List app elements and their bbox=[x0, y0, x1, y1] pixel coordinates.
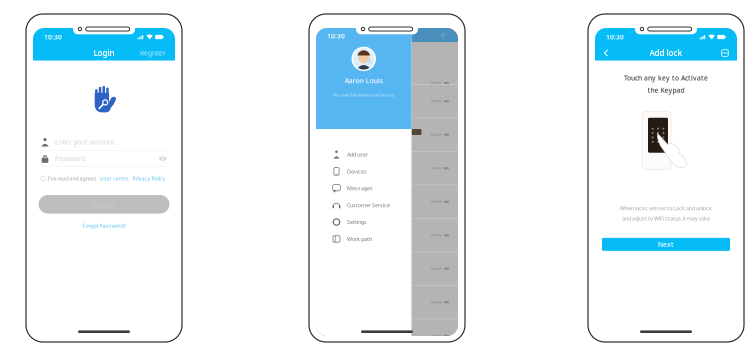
staticText: Settings bbox=[347, 218, 367, 226]
staticText: and adjust to WiFi status, it may take bbox=[622, 215, 710, 222]
staticText: Add lock bbox=[649, 48, 682, 58]
staticText: 10:30 bbox=[44, 33, 62, 41]
button[interactable]: Show password bbox=[159, 156, 167, 162]
staticText: Register bbox=[140, 49, 166, 57]
staticText: the Keypad bbox=[647, 86, 684, 95]
button[interactable]: Register bbox=[131, 46, 175, 60]
staticText: Personal Data and Account Security bbox=[333, 92, 394, 97]
staticText: Messages bbox=[347, 185, 373, 192]
button[interactable]: Privacy Policy bbox=[129, 175, 165, 182]
staticText: Next bbox=[658, 240, 674, 249]
staticText: Enter your account bbox=[55, 138, 114, 146]
button[interactable]: Login bbox=[38, 195, 169, 214]
button[interactable]: Work path bbox=[316, 230, 411, 247]
staticText: When locks are set to Lock and unlock bbox=[620, 205, 712, 212]
staticText: Devices bbox=[347, 168, 367, 175]
button[interactable]: Devices bbox=[316, 163, 411, 180]
staticText: Privacy Policy bbox=[132, 175, 165, 182]
button[interactable]: User Terms bbox=[96, 175, 128, 182]
button[interactable]: Next bbox=[602, 238, 730, 251]
staticText: I've read and agreed bbox=[47, 175, 96, 182]
button[interactable]: Customer Service bbox=[316, 197, 411, 214]
staticText: Add user bbox=[347, 151, 368, 158]
button[interactable]: Settings bbox=[316, 214, 411, 230]
staticText: User Terms bbox=[99, 175, 128, 182]
button[interactable]: Scan code bbox=[713, 45, 737, 60]
button[interactable]: Add user bbox=[316, 146, 411, 163]
staticText: Work path bbox=[347, 235, 372, 242]
staticText: Login bbox=[93, 48, 114, 58]
staticText: Touch any key to Activate bbox=[624, 73, 708, 82]
staticText: Customer Service bbox=[347, 202, 390, 209]
staticText: 10:30 bbox=[606, 33, 624, 41]
staticText: Aaron Louis bbox=[345, 76, 383, 85]
button[interactable]: Messages bbox=[316, 180, 411, 197]
staticText: 10:30 bbox=[327, 31, 345, 40]
button[interactable]: Forgot Password? bbox=[76, 219, 131, 232]
button[interactable]: Back bbox=[595, 46, 617, 60]
button[interactable]: Agree to terms bbox=[41, 176, 45, 181]
staticText: , bbox=[128, 175, 129, 182]
staticText: Forgot Password? bbox=[82, 222, 125, 229]
staticText: Password bbox=[55, 154, 85, 163]
